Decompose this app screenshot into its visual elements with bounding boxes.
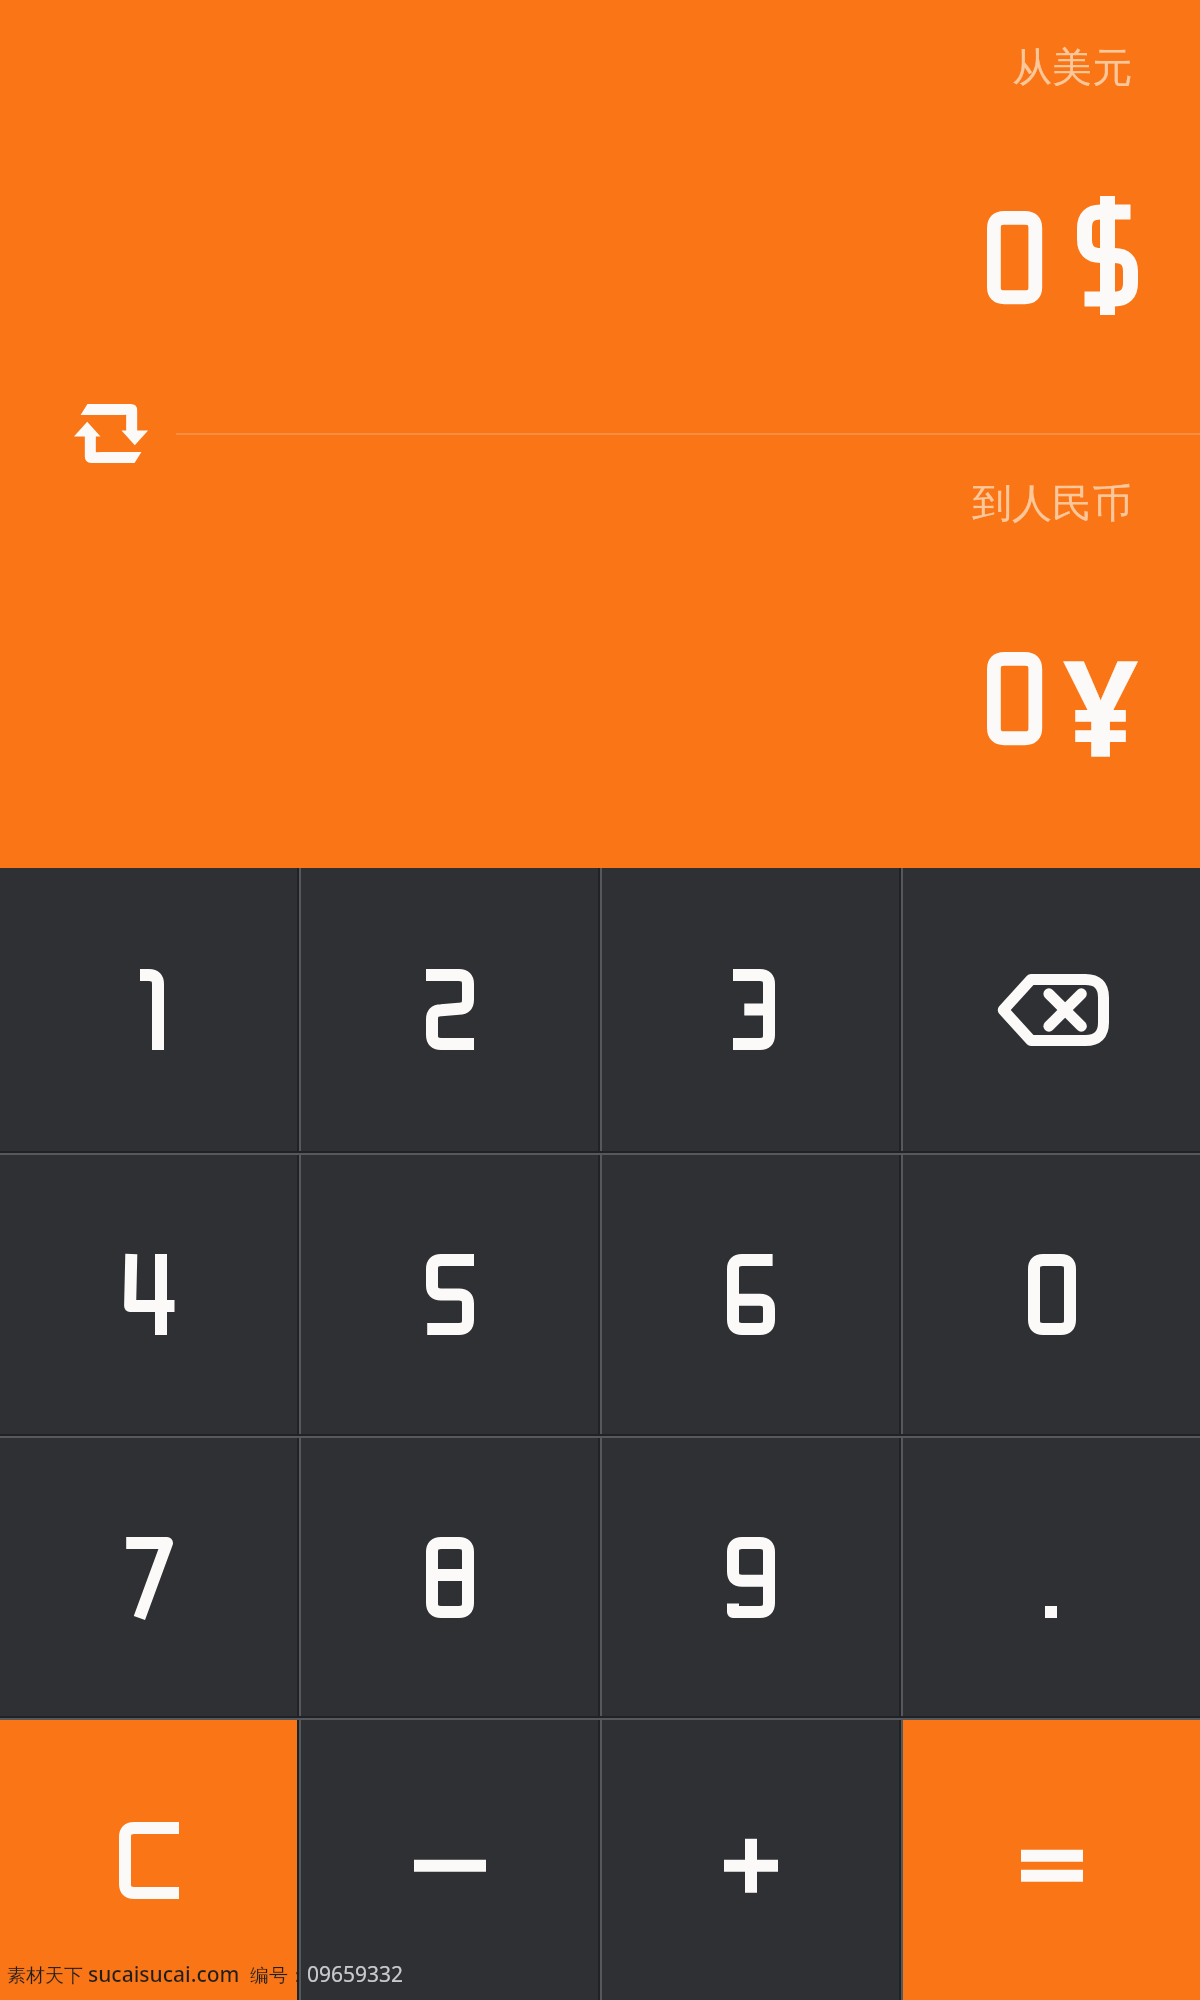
button[interactable]: [602, 1438, 899, 1716]
staticText: 从美元: [1012, 42, 1132, 92]
button[interactable]: [301, 1720, 598, 2000]
button[interactable]: Swap currencies: [48, 380, 174, 486]
staticText: 素材天下: [7, 1962, 88, 1988]
button[interactable]: [602, 868, 899, 1151]
button[interactable]: [903, 1438, 1200, 1716]
button[interactable]: [0, 868, 297, 1151]
button[interactable]: [301, 868, 598, 1151]
staticText: ¥: [1063, 615, 1139, 795]
staticText: 编号：: [240, 1962, 307, 1988]
button[interactable]: [602, 1720, 899, 2000]
button[interactable]: [0, 1720, 297, 2000]
button[interactable]: Backspace: [903, 868, 1200, 1151]
button[interactable]: [301, 1438, 598, 1716]
button[interactable]: [903, 1720, 1200, 2000]
button[interactable]: [301, 1155, 598, 1434]
button[interactable]: [0, 1438, 297, 1716]
button[interactable]: [0, 1155, 297, 1434]
button[interactable]: [602, 1155, 899, 1434]
staticText: sucaisucai.com: [88, 1960, 240, 1989]
staticText: 到人民币: [972, 478, 1132, 528]
staticText: 09659332: [307, 1960, 404, 1989]
button[interactable]: [903, 1155, 1200, 1434]
